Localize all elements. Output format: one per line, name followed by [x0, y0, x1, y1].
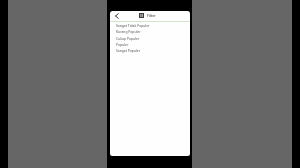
button[interactable]: Populer — [110, 41, 190, 47]
button[interactable]: Cukup Populer — [110, 35, 190, 41]
staticText: Filter — [147, 13, 156, 18]
button[interactable]: Sangat Tidak Populer — [110, 22, 190, 28]
button[interactable]: Kurang Populer — [110, 28, 190, 34]
staticText: Kurang Populer — [116, 29, 141, 33]
staticText: Cukup Populer — [116, 36, 140, 40]
staticText: Populer — [116, 42, 129, 46]
button[interactable]: Back — [112, 11, 121, 20]
staticText: Sangat Populer — [116, 48, 141, 52]
button[interactable]: Sangat Populer — [110, 47, 190, 53]
staticText: Sangat Tidak Populer — [116, 23, 150, 27]
